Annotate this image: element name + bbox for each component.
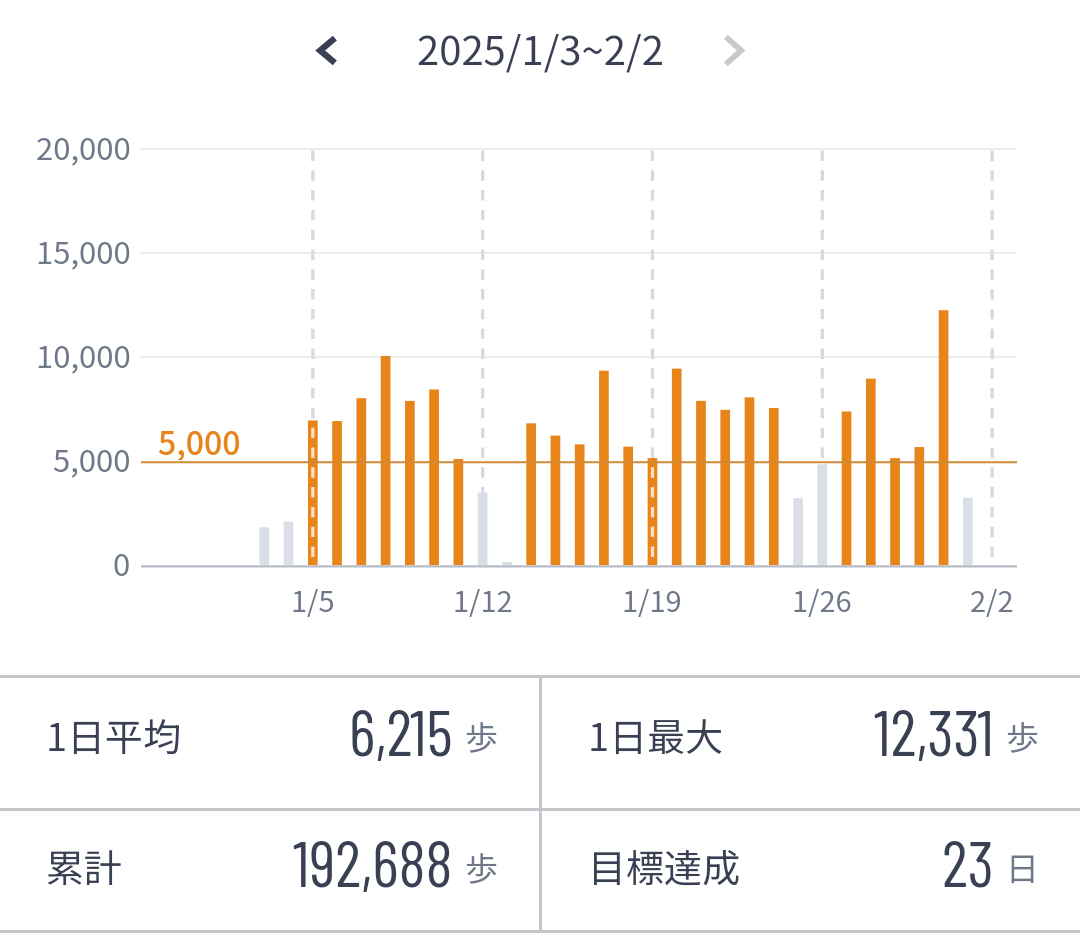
staticText: 192,688 <box>293 823 453 900</box>
staticText: 15,000 <box>36 228 131 272</box>
staticText: 1日平均 <box>46 707 182 762</box>
staticText: 20,000 <box>36 124 131 168</box>
staticText: 0 <box>113 540 131 584</box>
staticText: 1/5 <box>291 578 335 618</box>
button[interactable]: 累計 <box>0 811 539 930</box>
staticText: 歩 <box>465 712 498 760</box>
staticText: 10,000 <box>36 332 131 376</box>
staticText: 歩 <box>465 843 498 891</box>
staticText: 1/12 <box>453 578 513 618</box>
button[interactable]: Previous period <box>297 20 357 80</box>
staticText: 2/2 <box>970 578 1014 618</box>
staticText: 2025/1/3~2/2 <box>417 19 664 77</box>
staticText: 日 <box>1006 843 1039 891</box>
button[interactable]: 1日最大 <box>542 678 1080 808</box>
staticText: 5,000 <box>158 418 241 460</box>
button[interactable]: Next period <box>703 20 763 80</box>
staticText: 累計 <box>46 838 123 893</box>
staticText: 歩 <box>1006 712 1039 760</box>
staticText: 目標達成 <box>588 838 741 893</box>
staticText: 1/26 <box>792 578 852 618</box>
staticText: 5,000 <box>53 436 131 480</box>
staticText: 1/19 <box>622 578 682 618</box>
staticText: 1日最大 <box>588 707 724 762</box>
staticText: 12,331 <box>874 692 994 769</box>
button[interactable]: 目標達成 <box>542 811 1080 930</box>
staticText: 6,215 <box>349 692 453 769</box>
button[interactable]: 1日平均 <box>0 678 539 808</box>
staticText: 23 <box>942 823 994 900</box>
